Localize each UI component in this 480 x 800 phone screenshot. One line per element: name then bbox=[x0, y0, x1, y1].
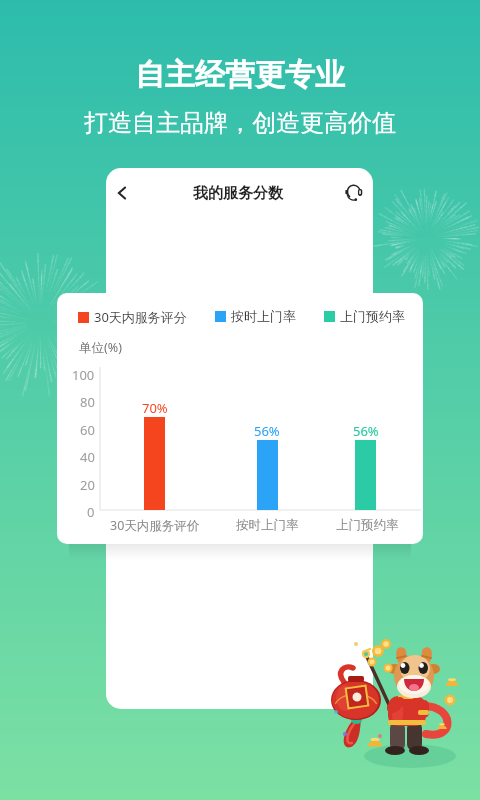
staticText: 40 bbox=[80, 448, 95, 464]
staticText: 56% bbox=[353, 422, 379, 440]
staticText: 20 bbox=[80, 476, 95, 492]
staticText: 自主经营更专业 bbox=[135, 56, 345, 94]
staticText: 30天内服务评价 bbox=[110, 517, 200, 534]
staticText: 按时上门率 bbox=[231, 308, 296, 324]
staticText: 我的服务分数 bbox=[193, 184, 283, 203]
staticText: 60 bbox=[80, 421, 95, 437]
staticText: 56% bbox=[254, 422, 280, 440]
button[interactable]: 按时上门率 bbox=[215, 308, 296, 324]
staticText: 80 bbox=[80, 393, 95, 409]
button[interactable]: Back bbox=[108, 179, 136, 207]
staticText: 单位(%) bbox=[79, 339, 122, 356]
staticText: 上门预约率 bbox=[336, 517, 399, 533]
staticText: 上门预约率 bbox=[340, 308, 405, 324]
staticText: 100 bbox=[72, 366, 95, 382]
button[interactable]: Customer service bbox=[340, 179, 368, 207]
button[interactable]: 30天内服务评分 bbox=[78, 308, 187, 326]
staticText: 打造自主品牌，创造更高价值 bbox=[84, 108, 396, 138]
staticText: 70% bbox=[142, 399, 168, 417]
staticText: 0 bbox=[87, 503, 95, 519]
button[interactable]: 上门预约率 bbox=[324, 308, 405, 324]
staticText: 30天内服务评分 bbox=[94, 308, 187, 326]
staticText: 按时上门率 bbox=[236, 517, 299, 533]
